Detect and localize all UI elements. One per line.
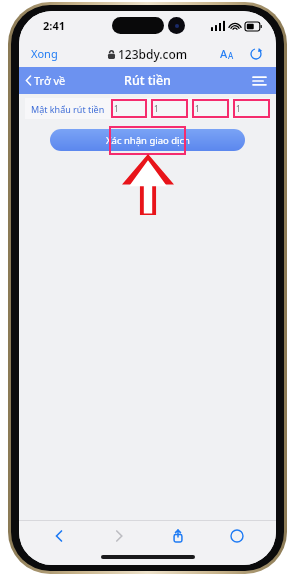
staticText: 123bdy.com bbox=[118, 46, 188, 62]
staticText: A bbox=[228, 50, 234, 61]
staticText: Xác nhận giao dịch bbox=[106, 134, 190, 147]
button[interactable]: Trở về bbox=[19, 69, 74, 92]
button[interactable]: Text size bbox=[217, 43, 237, 64]
staticText: 1 bbox=[114, 103, 119, 114]
staticText: Rút tiền bbox=[124, 72, 171, 89]
button[interactable]: Forward bbox=[89, 520, 148, 551]
staticText: 1 bbox=[236, 103, 241, 114]
button[interactable]: Reload bbox=[248, 46, 264, 62]
button[interactable]: Digit 1 bbox=[111, 99, 147, 118]
staticText: 1 bbox=[154, 103, 159, 114]
button[interactable]: Digit 3 bbox=[192, 99, 229, 118]
staticText: 1 bbox=[195, 103, 200, 114]
staticText: A bbox=[220, 46, 228, 61]
button[interactable]: Xong bbox=[19, 42, 66, 65]
button[interactable]: Digit 2 bbox=[151, 99, 188, 118]
button[interactable]: Digit 4 bbox=[233, 99, 270, 118]
button[interactable]: Menu bbox=[243, 70, 276, 92]
button[interactable]: Share bbox=[148, 520, 207, 551]
staticText: Trở về bbox=[34, 73, 66, 88]
button[interactable]: Back bbox=[29, 520, 89, 551]
button[interactable]: Xác nhận giao dịch bbox=[50, 129, 245, 151]
button[interactable]: Tabs bbox=[207, 520, 266, 551]
staticText: Mật khẩu rút tiền bbox=[31, 103, 105, 115]
staticText: 2:41 bbox=[43, 18, 65, 33]
